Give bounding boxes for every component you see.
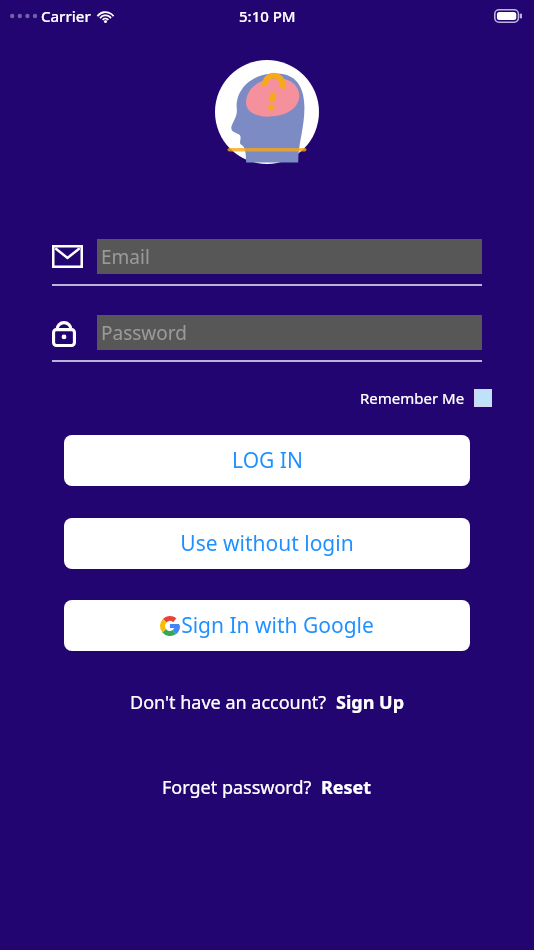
staticText: LOG IN [232, 446, 303, 475]
button[interactable]: Use without login [64, 518, 470, 569]
staticText: Reset [321, 775, 372, 800]
staticText: Forget password? [162, 775, 321, 800]
button[interactable]: Email [97, 239, 482, 274]
staticText: Sign In with Google [181, 611, 374, 640]
button[interactable]: Sign In with Google [64, 600, 470, 651]
staticText: Remember Me [360, 388, 465, 408]
staticText: Password [101, 320, 187, 346]
button[interactable]: LOG IN [64, 435, 470, 486]
staticText: Sign Up [336, 690, 405, 715]
button[interactable]: Remember Me [360, 384, 492, 412]
staticText: 5:10 PM [239, 6, 296, 26]
button[interactable]: Forget password? [0, 775, 534, 800]
staticText: Don't have an account? [130, 690, 336, 715]
button[interactable]: Don't have an account? [0, 690, 534, 715]
button[interactable]: Password [97, 315, 482, 350]
staticText: Email [101, 244, 150, 270]
staticText: Carrier [41, 6, 91, 26]
staticText: Use without login [180, 529, 354, 558]
